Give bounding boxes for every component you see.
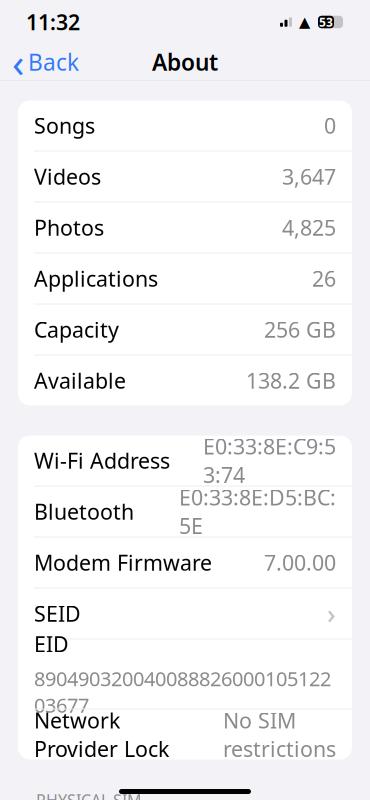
staticText: Available xyxy=(34,366,126,395)
staticText: › xyxy=(327,596,336,631)
staticText: Capacity xyxy=(34,315,119,344)
button[interactable]: Wi-Fi Address xyxy=(18,435,352,485)
staticText: Applications xyxy=(34,264,158,293)
staticText: Back xyxy=(28,47,79,77)
button[interactable]: Bluetooth xyxy=(18,486,352,536)
staticText: E0:33:8E:C9:53:74 xyxy=(203,432,336,489)
staticText: 53 xyxy=(319,14,333,30)
staticText: 0 xyxy=(324,111,336,140)
button[interactable]: EID xyxy=(18,639,352,708)
button[interactable]: ‹ xyxy=(0,42,91,82)
staticText: E0:33:8E:D5:BC:5E xyxy=(179,483,336,540)
button[interactable]: Network Provider Lock xyxy=(18,709,352,759)
staticText: ‹ xyxy=(12,35,24,88)
button[interactable]: Applications xyxy=(18,253,352,303)
staticText: Photos xyxy=(34,213,104,242)
button[interactable]: Photos xyxy=(18,202,352,252)
staticText: SEID xyxy=(34,599,81,628)
staticText: ▲ xyxy=(299,14,310,30)
staticText: Modem Firmware xyxy=(34,548,212,577)
staticText: 11:32 xyxy=(26,8,80,36)
staticText: 7.00.00 xyxy=(264,548,336,577)
staticText: 3,647 xyxy=(282,162,336,191)
staticText: EID xyxy=(34,630,69,658)
staticText: Wi-Fi Address xyxy=(34,446,170,475)
staticText: 89049032004008882600010512203677 xyxy=(34,665,331,718)
button[interactable]: SEID xyxy=(18,588,352,638)
staticText: No SIM restrictions xyxy=(223,706,336,763)
button[interactable]: Available xyxy=(18,355,352,405)
staticText: Songs xyxy=(34,111,95,140)
button[interactable]: Videos xyxy=(18,151,352,201)
staticText: Network Provider Lock xyxy=(34,706,169,763)
button[interactable]: Modem Firmware xyxy=(18,537,352,587)
staticText: 138.2 GB xyxy=(246,366,336,395)
staticText: Videos xyxy=(34,162,101,191)
staticText: Bluetooth xyxy=(34,497,134,526)
staticText: PHYSICAL SIM xyxy=(36,789,142,800)
button[interactable]: Capacity xyxy=(18,304,352,354)
button[interactable]: Songs xyxy=(18,100,352,150)
staticText: 26 xyxy=(312,264,336,293)
staticText: 256 GB xyxy=(264,315,336,344)
staticText: About xyxy=(152,47,218,77)
staticText: 4,825 xyxy=(282,213,336,242)
